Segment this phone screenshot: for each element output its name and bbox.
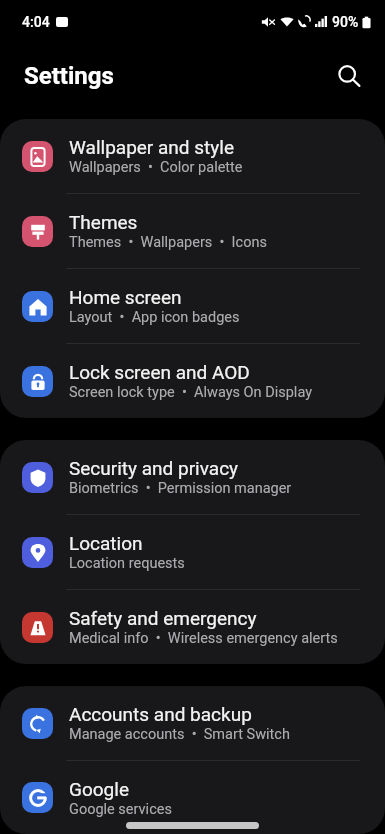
staticText: Lock screen and AOD [69,361,250,383]
staticText: 4:04 [22,14,50,30]
button[interactable]: Safety and emergency [0,590,385,664]
button[interactable]: Lock screen and AOD [0,344,385,418]
staticText: Location [69,532,143,554]
button[interactable]: Themes [0,194,385,268]
staticText: Safety and emergency [69,607,257,629]
staticText: Wallpaper and style [69,136,234,158]
staticText: Layout • App icon badges [69,309,240,326]
button[interactable]: Location [0,515,385,589]
button[interactable]: Home screen [0,269,385,343]
staticText: Location requests [69,555,185,572]
staticText: Medical info • Wireless emergency alerts [69,630,338,647]
button[interactable]: Accounts and backup [0,686,385,760]
staticText: Biometrics • Permission manager [69,480,292,497]
button[interactable]: Wallpaper and style [0,119,385,193]
button[interactable]: Search [326,53,372,99]
staticText: Google services [69,801,172,818]
button[interactable]: Google [0,761,385,834]
staticText: Google [69,778,129,800]
staticText: Themes • Wallpapers • Icons [69,234,267,251]
button[interactable]: Security and privacy [0,440,385,514]
staticText: Manage accounts • Smart Switch [69,726,290,743]
staticText: Home screen [69,286,182,308]
staticText: Wallpapers • Color palette [69,159,243,176]
staticText: 90% [332,14,359,30]
staticText: Themes [69,211,138,233]
staticText: Security and privacy [69,457,239,479]
staticText: Screen lock type • Always On Display [69,384,313,401]
staticText: Settings [24,62,114,90]
staticText: Accounts and backup [69,703,252,725]
